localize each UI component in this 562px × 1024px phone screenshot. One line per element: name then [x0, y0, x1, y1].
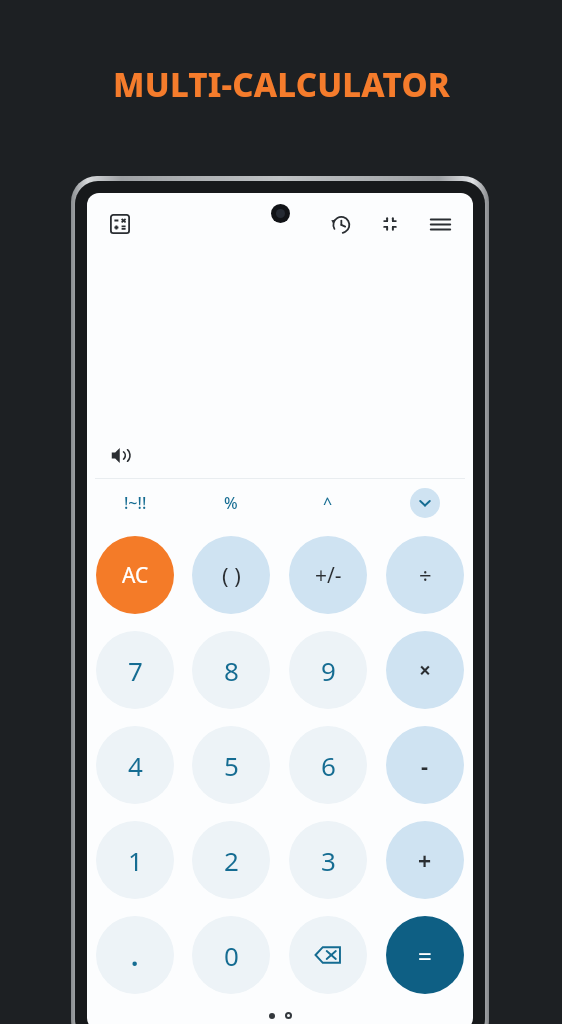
button[interactable]: -: [386, 726, 464, 804]
button[interactable]: 5: [192, 726, 270, 804]
button[interactable]: ×: [386, 631, 464, 709]
button[interactable]: 9: [289, 631, 367, 709]
staticText: 1: [128, 843, 143, 878]
staticText: 7: [128, 653, 143, 688]
button[interactable]: 3: [289, 821, 367, 899]
staticText: 0: [224, 938, 239, 973]
button[interactable]: 8: [192, 631, 270, 709]
button[interactable]: ( ): [192, 536, 270, 614]
button[interactable]: 0: [192, 916, 270, 994]
staticText: 9: [321, 653, 336, 688]
staticText: ^: [323, 492, 333, 514]
button[interactable]: 4: [96, 726, 174, 804]
button[interactable]: 6: [289, 726, 367, 804]
button[interactable]: More functions: [410, 488, 440, 518]
staticText: 6: [321, 748, 336, 783]
staticText: -: [421, 750, 429, 780]
button[interactable]: !~!!: [87, 479, 183, 527]
staticText: =: [418, 939, 432, 972]
button[interactable]: Calculator mode: [101, 205, 139, 243]
button[interactable]: %: [183, 479, 279, 527]
button[interactable]: +: [386, 821, 464, 899]
button[interactable]: 1: [96, 821, 174, 899]
staticText: MULTI-CALCULATOR: [113, 62, 450, 107]
button[interactable]: ^: [279, 479, 376, 527]
button[interactable]: 2: [192, 821, 270, 899]
button[interactable]: ÷: [386, 536, 464, 614]
staticText: %: [224, 492, 238, 514]
button[interactable]: Collapse: [371, 205, 409, 243]
staticText: !~!!: [124, 492, 147, 514]
staticText: .: [131, 938, 139, 973]
staticText: +: [418, 845, 432, 876]
staticText: 5: [224, 748, 239, 783]
button[interactable]: Menu: [421, 205, 459, 243]
button[interactable]: =: [386, 916, 464, 994]
staticText: ÷: [419, 560, 432, 590]
button[interactable]: AC: [96, 536, 174, 614]
staticText: ×: [419, 656, 432, 685]
staticText: 8: [224, 653, 239, 688]
button[interactable]: Backspace: [289, 916, 367, 994]
button[interactable]: .: [96, 916, 174, 994]
button[interactable]: 7: [96, 631, 174, 709]
button[interactable]: +/-: [289, 536, 367, 614]
staticText: 2: [224, 843, 239, 878]
button[interactable]: History: [321, 205, 359, 243]
staticText: 4: [128, 748, 143, 783]
staticText: +/-: [315, 561, 342, 590]
staticText: AC: [122, 561, 149, 590]
staticText: 3: [321, 843, 336, 878]
button[interactable]: Speak result: [103, 438, 137, 472]
staticText: ( ): [222, 560, 241, 590]
